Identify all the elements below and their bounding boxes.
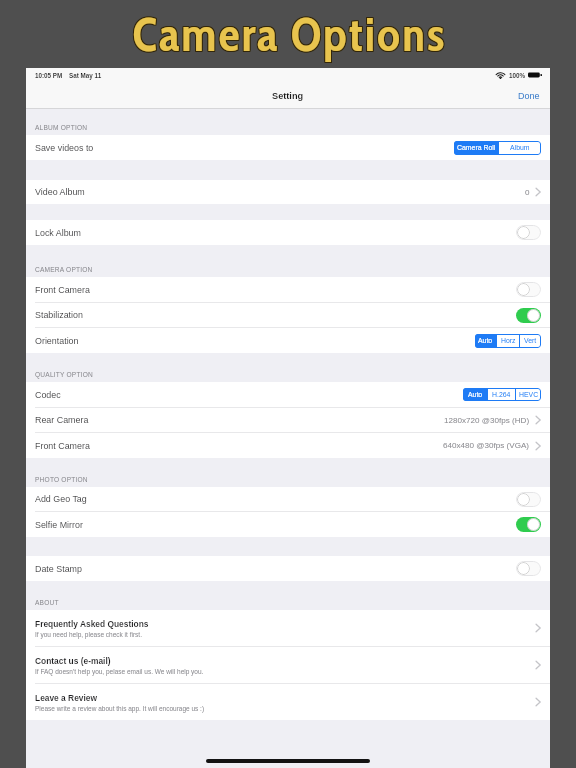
staticText: QUALITY OPTION <box>35 371 94 378</box>
button[interactable]: Auto <box>463 388 487 401</box>
staticText: Codec <box>35 390 61 400</box>
button[interactable]: Switch off <box>516 561 541 576</box>
staticText: Front Camera <box>35 441 90 451</box>
button[interactable]: Done <box>518 91 550 101</box>
button[interactable]: Codec <box>26 382 550 407</box>
button[interactable]: Stabilization <box>26 303 550 327</box>
staticText: 0 <box>525 188 530 197</box>
staticText: ABOUT <box>35 599 59 606</box>
button[interactable]: Front Camera <box>26 277 550 302</box>
staticText: Camera Options <box>131 7 446 64</box>
button[interactable]: Frequently Asked Questions <box>26 610 550 646</box>
staticText: Lock Album <box>35 228 81 238</box>
staticText: Frequently Asked Questions <box>35 619 149 628</box>
staticText: HEVC <box>519 391 539 399</box>
staticText: Auto <box>468 391 483 399</box>
staticText: Save videos to <box>35 143 94 153</box>
button[interactable]: Save videos to <box>26 135 550 160</box>
staticText: If you need help, please check it first. <box>35 631 142 638</box>
staticText: Vert <box>524 337 537 345</box>
staticText: Camera Options <box>131 5 446 62</box>
button[interactable]: Video Album <box>26 180 550 204</box>
staticText: If FAQ doesn't help you, pelase email us… <box>35 668 204 675</box>
staticText: ALBUM OPTION <box>35 124 88 131</box>
button[interactable]: Switch off <box>516 225 541 240</box>
button[interactable]: Switch off <box>516 282 541 297</box>
button[interactable]: Add Geo Tag <box>26 487 550 511</box>
button[interactable]: Contact us (e-mail) <box>26 647 550 683</box>
button[interactable]: Orientation <box>26 328 550 353</box>
button[interactable]: HEVC <box>516 388 541 401</box>
button[interactable]: Album <box>499 141 541 155</box>
staticText: 1280x720 @30fps (HD) <box>444 416 530 425</box>
staticText: Selfie Mirror <box>35 520 83 530</box>
staticText: Date Stamp <box>35 564 82 574</box>
staticText: 640x480 @30fps (VGA) <box>443 441 530 450</box>
staticText: Camera Options <box>132 7 447 64</box>
staticText: Camera Roll <box>457 144 496 152</box>
button[interactable]: Front Camera <box>26 433 550 458</box>
staticText: Leave a Review <box>35 693 98 702</box>
button[interactable]: Rear Camera <box>26 408 550 432</box>
staticText: Horz <box>501 337 516 345</box>
staticText: Video Album <box>35 187 85 197</box>
staticText: Front Camera <box>35 285 90 295</box>
button[interactable]: Switch on <box>516 308 541 323</box>
staticText: Camera Options <box>133 5 448 62</box>
button[interactable]: Leave a Review <box>26 684 550 720</box>
staticText: Please write a review about this app. It… <box>35 705 205 712</box>
button[interactable]: Date Stamp <box>26 556 550 581</box>
staticText: Auto <box>478 337 493 345</box>
staticText: Done <box>518 91 540 101</box>
staticText: Camera Options <box>131 6 446 63</box>
staticText: Album <box>510 144 530 152</box>
staticText: PHOTO OPTION <box>35 476 88 483</box>
staticText: Setting <box>272 91 304 101</box>
staticText: 10:05 PM <box>35 72 63 79</box>
button[interactable]: Lock Album <box>26 220 550 245</box>
button[interactable]: Selfie Mirror <box>26 512 550 537</box>
button[interactable]: Camera Roll <box>454 141 498 155</box>
staticText: Camera Options <box>132 6 447 63</box>
staticText: Camera Options <box>133 6 448 63</box>
staticText: Add Geo Tag <box>35 494 87 504</box>
staticText: CAMERA OPTION <box>35 266 93 273</box>
button[interactable]: Switch on <box>516 517 541 532</box>
button[interactable]: Switch off <box>516 492 541 507</box>
staticText: 100% <box>509 72 526 79</box>
staticText: Sat May 11 <box>69 72 102 79</box>
staticText: Stabilization <box>35 310 83 320</box>
staticText: Camera Options <box>132 5 447 62</box>
staticText: H.264 <box>492 391 511 399</box>
button[interactable]: Auto <box>475 334 496 348</box>
button[interactable]: H.264 <box>488 388 515 401</box>
staticText: Contact us (e-mail) <box>35 656 111 665</box>
staticText: Camera Options <box>133 7 448 64</box>
button[interactable]: Horz <box>497 334 519 348</box>
staticText: Rear Camera <box>35 415 89 425</box>
button[interactable]: Vert <box>520 334 541 348</box>
staticText: Orientation <box>35 336 79 346</box>
